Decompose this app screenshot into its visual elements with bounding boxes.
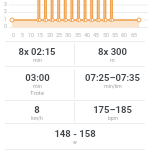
staticText: 65 [131, 32, 137, 38]
staticText: 0 [4, 23, 7, 29]
staticText: 1 [4, 16, 7, 22]
staticText: 07:25–07:35 [85, 72, 140, 83]
staticText: 8x 300 [98, 46, 127, 57]
staticText: 60 [121, 32, 127, 38]
staticText: 0 [12, 32, 15, 38]
staticText: 25 [56, 32, 62, 38]
staticText: 35 [75, 32, 81, 38]
staticText: 148 - 158 [54, 128, 96, 139]
staticText: 175–185 [93, 104, 132, 115]
staticText: 10 [28, 32, 34, 38]
staticText: m [110, 57, 115, 63]
staticText: min [33, 83, 42, 89]
staticText: 30 [65, 32, 71, 38]
staticText: 3 [4, 1, 7, 7]
staticText: 8 [34, 104, 40, 115]
staticText: 40 [84, 32, 90, 38]
staticText: 55 [112, 32, 118, 38]
staticText: Trote [30, 89, 44, 96]
staticText: min [33, 57, 42, 63]
staticText: 20 [47, 32, 53, 38]
staticText: km/h [31, 115, 43, 121]
staticText: 8x 02:15 [18, 46, 56, 57]
staticText: min/km [104, 83, 122, 89]
staticText: 03:00 [25, 72, 50, 83]
staticText: 15 [37, 32, 43, 38]
staticText: 2 [4, 8, 7, 14]
staticText: bpm [108, 115, 118, 121]
staticText: 50 [103, 32, 109, 38]
staticText: 45 [93, 32, 99, 38]
staticText: w [73, 139, 77, 145]
staticText: 5 [21, 32, 24, 38]
